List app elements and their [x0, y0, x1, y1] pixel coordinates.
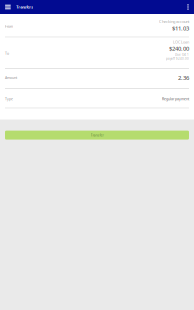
- staticText: $240.00: [169, 45, 189, 53]
- button[interactable]: Transfer: [0, 131, 194, 140]
- staticText: Checking account: [159, 19, 189, 24]
- button[interactable]: More options: [183, 0, 192, 14]
- staticText: Due Oct 1: [175, 53, 189, 57]
- button[interactable]: From: [0, 14, 194, 37]
- staticText: payoff $240.00: [166, 57, 189, 61]
- staticText: Type: [5, 96, 13, 101]
- staticText: To: [5, 51, 9, 56]
- button[interactable]: Type: [0, 89, 194, 108]
- staticText: From: [5, 24, 13, 29]
- staticText: Transfer: [90, 133, 103, 137]
- button[interactable]: Amount: [0, 69, 194, 89]
- staticText: $11.03: [172, 24, 189, 32]
- staticText: Transfers: [16, 4, 33, 10]
- staticText: 2.36: [178, 74, 189, 82]
- staticText: LOC Loan: [173, 39, 189, 45]
- button[interactable]: Menu: [2, 0, 13, 14]
- button[interactable]: To: [0, 37, 194, 69]
- staticText: Amount: [5, 75, 17, 80]
- staticText: Regular payment: [162, 96, 189, 101]
